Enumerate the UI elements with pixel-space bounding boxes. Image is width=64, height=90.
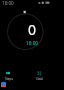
button[interactable]: More bbox=[31, 70, 48, 80]
staticText: Steps bbox=[5, 77, 13, 81]
staticText: 16:00 bbox=[2, 0, 14, 6]
staticText: 16:00 bbox=[26, 40, 39, 46]
button[interactable]: App shortcut bbox=[1, 82, 6, 87]
staticText: Goal bbox=[36, 77, 43, 81]
button[interactable]: Activity bbox=[0, 70, 17, 80]
staticText: 0 bbox=[28, 20, 37, 38]
